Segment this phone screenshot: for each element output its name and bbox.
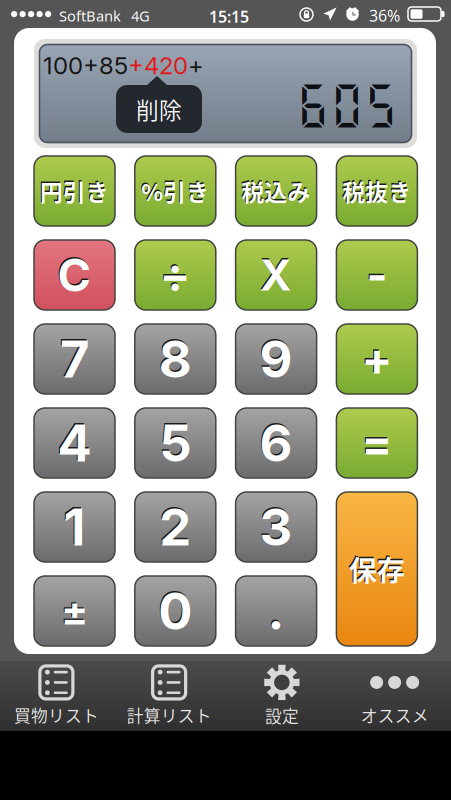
staticText: -	[365, 246, 386, 301]
staticText: 税抜き	[342, 175, 411, 207]
staticText: 保存	[349, 549, 405, 589]
staticText: .	[267, 579, 284, 640]
staticText: 36%	[369, 5, 400, 26]
button[interactable]: %引き	[135, 156, 216, 226]
button[interactable]: ±	[34, 576, 115, 646]
staticText: 100+85	[43, 51, 128, 80]
staticText: 5	[158, 411, 190, 472]
button[interactable]: X	[236, 240, 317, 310]
staticText: 6	[260, 412, 293, 474]
staticText: 3	[259, 495, 292, 556]
staticText: 9	[259, 327, 292, 388]
button[interactable]: .	[236, 576, 317, 646]
staticText: 計算リスト	[127, 703, 212, 727]
staticText: 1	[63, 496, 85, 558]
button[interactable]: ÷	[135, 240, 216, 310]
staticText: 8	[159, 328, 192, 390]
staticText: -	[366, 248, 387, 302]
button[interactable]: 6	[236, 408, 317, 478]
staticText: 削除	[136, 93, 182, 125]
button[interactable]: 計算リスト	[113, 661, 226, 731]
button[interactable]: 2	[135, 492, 216, 562]
staticText: 0	[158, 580, 192, 642]
staticText: 保存	[348, 547, 404, 588]
button[interactable]: 買物リスト	[0, 661, 113, 731]
staticText: +420	[128, 51, 188, 80]
staticText: 7	[60, 328, 89, 390]
staticText: 15:15	[209, 6, 249, 27]
staticText: オススメ	[361, 703, 429, 727]
button[interactable]: 0	[135, 576, 216, 646]
staticText: %引き	[140, 173, 208, 206]
staticText: C	[57, 248, 91, 302]
staticText: 4G	[131, 6, 150, 25]
staticText: ±	[61, 587, 87, 635]
button[interactable]: -	[336, 240, 417, 310]
button[interactable]: 4	[34, 408, 115, 478]
staticText: =	[361, 416, 392, 470]
staticText: =	[360, 414, 391, 469]
button[interactable]: 8	[135, 324, 216, 394]
staticText: 2	[158, 495, 190, 556]
button[interactable]: 9	[236, 324, 317, 394]
staticText: 7	[59, 327, 88, 388]
staticText: 税込み	[241, 173, 310, 206]
button[interactable]: 保存	[336, 492, 417, 646]
staticText: 設定	[265, 703, 299, 727]
staticText: 1	[63, 495, 85, 556]
staticText: 5	[159, 412, 191, 474]
staticText: +	[188, 51, 204, 80]
staticText: 税込み	[242, 175, 311, 207]
staticText: +	[360, 330, 391, 385]
button[interactable]: =	[336, 408, 417, 478]
staticText: 605	[296, 77, 398, 132]
staticText: 6	[259, 411, 292, 472]
button[interactable]: C	[34, 240, 115, 310]
staticText: 4	[57, 411, 91, 472]
button[interactable]: 3	[236, 492, 317, 562]
button[interactable]: 円引き	[34, 156, 115, 226]
staticText: %引き	[141, 175, 209, 207]
staticText: 2	[159, 496, 191, 558]
staticText: 税抜き	[341, 173, 410, 206]
button[interactable]: 7	[34, 324, 115, 394]
staticText: 3	[260, 496, 293, 558]
staticText: 円引き	[39, 173, 108, 206]
button[interactable]: +	[336, 324, 417, 394]
button[interactable]: 税込み	[236, 156, 317, 226]
button[interactable]: 1	[34, 492, 115, 562]
staticText: 円引き	[40, 175, 109, 207]
staticText: ±	[61, 585, 87, 634]
staticText: 4	[57, 412, 91, 474]
staticText: X	[260, 249, 292, 301]
button[interactable]: オススメ	[338, 661, 451, 731]
button[interactable]: 税抜き	[336, 156, 417, 226]
button[interactable]: 5	[135, 408, 216, 478]
staticText: 買物リスト	[14, 703, 99, 727]
staticText: ÷	[159, 246, 190, 301]
staticText: +	[361, 332, 392, 386]
staticText: .	[268, 580, 285, 642]
staticText: X	[259, 248, 291, 299]
staticText: C	[57, 246, 91, 301]
staticText: 8	[158, 327, 191, 388]
button[interactable]: 削除	[116, 76, 202, 133]
button[interactable]: 設定	[225, 661, 338, 731]
staticText: 9	[260, 328, 293, 390]
staticText: ÷	[160, 248, 191, 302]
staticText: 0	[157, 579, 191, 640]
staticText: SoftBank	[59, 6, 121, 25]
